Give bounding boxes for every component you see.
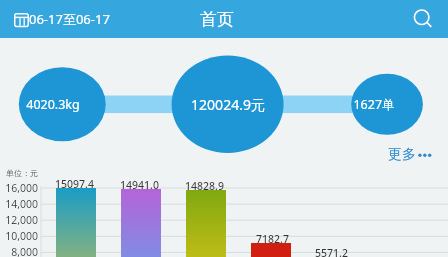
staticText: 14828.9 [185, 179, 224, 193]
staticText: 8,000 [0, 245, 38, 257]
staticText: 7182.7 [256, 232, 289, 246]
staticText: 14941.0 [120, 178, 159, 192]
staticText: 12,000 [0, 213, 38, 227]
staticText: 16,000 [0, 181, 38, 195]
staticText: 10,000 [0, 229, 38, 243]
button[interactable]: 1627单 [344, 86, 404, 122]
button[interactable]: 更多 [384, 144, 438, 166]
staticText: 更多 [388, 146, 416, 164]
staticText: 06-17至06-17 [29, 10, 110, 28]
staticText: 首页 [200, 9, 234, 30]
button[interactable]: 120024.9元 [178, 79, 278, 129]
staticText: 14,000 [0, 197, 38, 211]
staticText: 4020.3kg [26, 96, 80, 113]
button[interactable]: Search [408, 4, 438, 34]
staticText: 单位：元 [6, 168, 38, 178]
button[interactable]: 4020.3kg [19, 84, 87, 124]
other: Date range [14, 12, 29, 27]
staticText: 15097.4 [55, 177, 94, 191]
staticText: 1627单 [353, 96, 395, 113]
staticText: 120024.9元 [191, 95, 265, 114]
button[interactable]: Date range [14, 10, 110, 28]
staticText: 5571.2 [315, 246, 348, 257]
